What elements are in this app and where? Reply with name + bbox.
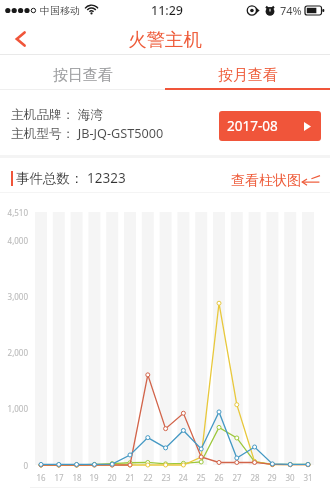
staticText: 0 xyxy=(1,460,28,471)
staticText: 查看柱状图 xyxy=(231,172,301,190)
staticText: 11:29 xyxy=(151,2,184,19)
button[interactable]: 按月查看 xyxy=(165,57,330,93)
button[interactable]: 查看柱状图 xyxy=(231,172,321,190)
staticText: 2017-08 xyxy=(227,117,278,135)
staticText: 25 xyxy=(192,472,210,483)
button[interactable]: 按日查看 xyxy=(0,57,165,93)
staticText: 主机品牌： 海湾 xyxy=(11,105,104,122)
staticText: 24 xyxy=(174,472,192,483)
staticText: 4,000 xyxy=(1,235,28,246)
staticText: 17 xyxy=(50,472,68,483)
staticText: 21 xyxy=(121,472,139,483)
staticText: 2,000 xyxy=(1,347,28,358)
staticText: 30 xyxy=(281,472,299,483)
staticText: 23 xyxy=(157,472,175,483)
staticText: 3,000 xyxy=(1,291,28,302)
staticText: 27 xyxy=(228,472,246,483)
staticText: 19 xyxy=(85,472,103,483)
staticText: 按月查看 xyxy=(218,66,278,85)
staticText: 主机型号： JB-JQ-GST5000 xyxy=(11,124,164,141)
staticText: 16 xyxy=(32,472,50,483)
staticText: 28 xyxy=(246,472,264,483)
staticText: 31 xyxy=(299,472,317,483)
staticText: 29 xyxy=(263,472,281,483)
button[interactable]: Back xyxy=(6,24,36,54)
staticText: 18 xyxy=(68,472,86,483)
staticText: 火警主机 xyxy=(128,28,202,51)
staticText: 1,000 xyxy=(1,403,28,414)
button[interactable]: 2017-08 xyxy=(219,111,321,141)
staticText: 74% xyxy=(280,3,302,18)
staticText: 事件总数： 12323 xyxy=(16,169,126,187)
staticText: 中国移动 xyxy=(40,4,80,17)
staticText: 按日查看 xyxy=(53,66,113,85)
staticText: 26 xyxy=(210,472,228,483)
staticText: 4,510 xyxy=(1,207,28,218)
staticText: 22 xyxy=(139,472,157,483)
staticText: 20 xyxy=(103,472,121,483)
